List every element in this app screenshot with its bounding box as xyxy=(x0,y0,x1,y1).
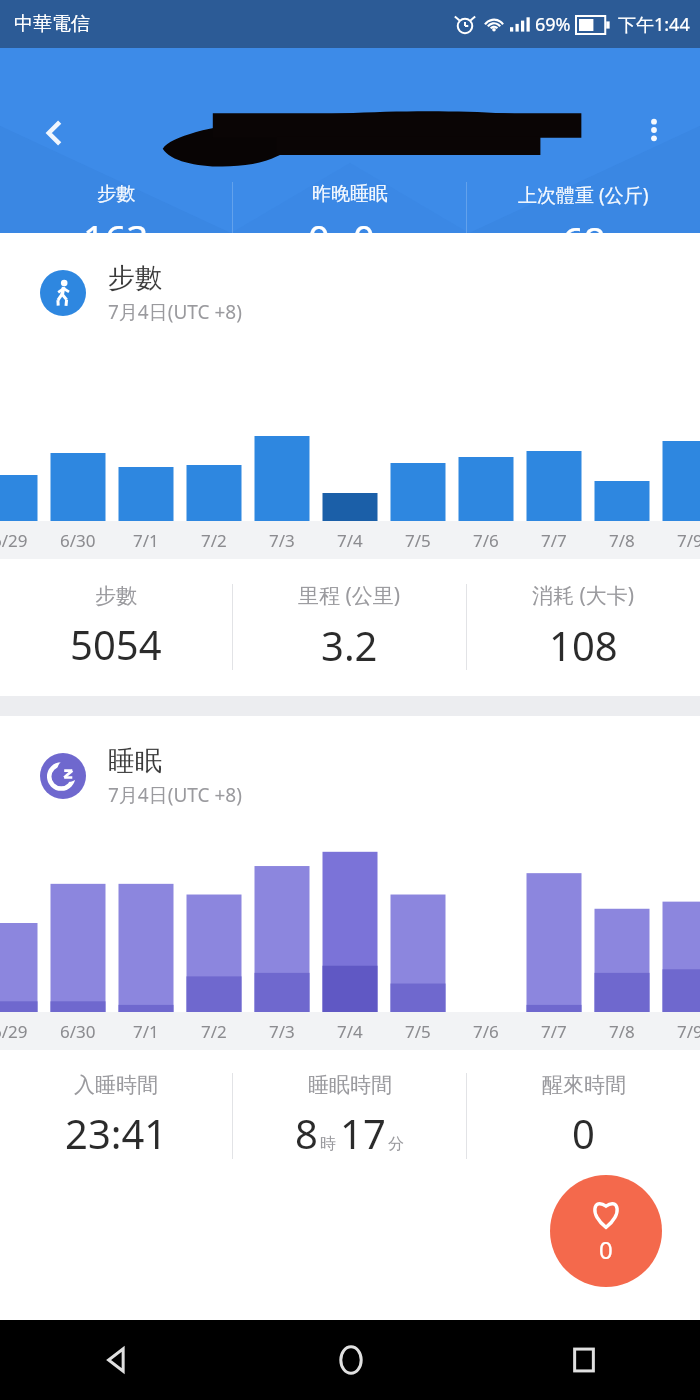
button[interactable]: Back xyxy=(26,104,84,162)
button[interactable]: More options xyxy=(628,104,680,156)
staticText: 23:41 xyxy=(65,1106,168,1160)
button[interactable]: 睡眠時間 xyxy=(233,1072,466,1160)
staticText: 7/2 xyxy=(201,1020,227,1043)
button[interactable]: 睡眠 xyxy=(0,716,700,808)
staticText: 7/9 xyxy=(677,529,700,552)
button[interactable]: Heart rate xyxy=(550,1175,662,1287)
staticText: 入睡時間 xyxy=(74,1072,158,1098)
button[interactable]: 里程 (公里) xyxy=(233,581,466,672)
staticText: 6/29 xyxy=(0,1020,28,1043)
staticText: 0 xyxy=(353,212,375,264)
staticText: 7月4日(UTC +8) xyxy=(108,782,242,808)
staticText: 步數 xyxy=(108,261,162,295)
staticText: 步數 xyxy=(97,182,135,206)
staticText: 7月4日(UTC +8) xyxy=(108,299,242,325)
staticText: 7/3 xyxy=(269,529,295,552)
button[interactable]: 消耗 (大卡) xyxy=(467,581,700,672)
staticText: 分 xyxy=(388,1134,404,1154)
staticText: 7/4 xyxy=(337,1020,363,1043)
staticText: 108 xyxy=(549,618,618,672)
staticText: 7/1 xyxy=(133,529,159,552)
staticText: 6/30 xyxy=(60,529,96,552)
staticText: 7/9 xyxy=(677,1020,700,1043)
button[interactable]: Back xyxy=(0,1320,234,1400)
staticText: 8 xyxy=(295,1106,318,1160)
staticText: 里程 (公里) xyxy=(298,581,401,610)
staticText: 7/3 xyxy=(269,1020,295,1043)
button[interactable]: 醒來時間 xyxy=(467,1072,700,1160)
staticText: 消耗 (大卡) xyxy=(532,581,635,610)
button[interactable]: Home xyxy=(234,1320,467,1400)
staticText: 7/4 xyxy=(337,529,363,552)
button[interactable]: Recents xyxy=(467,1320,700,1400)
staticText: 3.2 xyxy=(321,618,378,672)
button[interactable]: 昨晚睡眠 xyxy=(233,182,466,264)
staticText: 69% xyxy=(535,12,571,37)
staticText: 7/5 xyxy=(405,1020,431,1043)
staticText: 昨晚睡眠 xyxy=(312,182,388,206)
staticText: 上次體重 (公斤) xyxy=(518,182,649,208)
button[interactable]: 入睡時間 xyxy=(0,1072,232,1160)
staticText: 6/29 xyxy=(0,529,28,552)
staticText: 醒來時間 xyxy=(542,1072,626,1098)
staticText: 7/2 xyxy=(201,529,227,552)
staticText: 步數 xyxy=(95,583,137,609)
staticText: 17 xyxy=(340,1106,386,1160)
staticText: 7/8 xyxy=(609,529,635,552)
button[interactable]: 步數 xyxy=(0,233,700,325)
staticText: 時 xyxy=(320,1134,336,1154)
staticText: 0 xyxy=(599,1233,613,1266)
staticText: 0 xyxy=(308,212,330,264)
staticText: 163 xyxy=(83,212,149,264)
staticText: 中華電信 xyxy=(14,12,90,36)
staticText: 7/5 xyxy=(405,529,431,552)
staticText: 睡眠時間 xyxy=(308,1072,392,1098)
staticText: 6/30 xyxy=(60,1020,96,1043)
button[interactable]: 步數 xyxy=(0,583,232,671)
staticText: 睡眠 xyxy=(108,744,162,778)
staticText: 7/6 xyxy=(473,529,499,552)
staticText: 7/7 xyxy=(541,1020,567,1043)
button[interactable]: 上次體重 (公斤) xyxy=(467,182,700,266)
staticText: 68 xyxy=(562,214,606,266)
staticText: 下午1:44 xyxy=(618,12,690,37)
staticText: 7/8 xyxy=(609,1020,635,1043)
button[interactable]: 步數 xyxy=(0,182,232,264)
staticText: 5054 xyxy=(70,617,162,671)
staticText: 7/1 xyxy=(133,1020,159,1043)
staticText: 0 xyxy=(572,1106,595,1160)
staticText: 7/7 xyxy=(541,529,567,552)
staticText: 7/6 xyxy=(473,1020,499,1043)
